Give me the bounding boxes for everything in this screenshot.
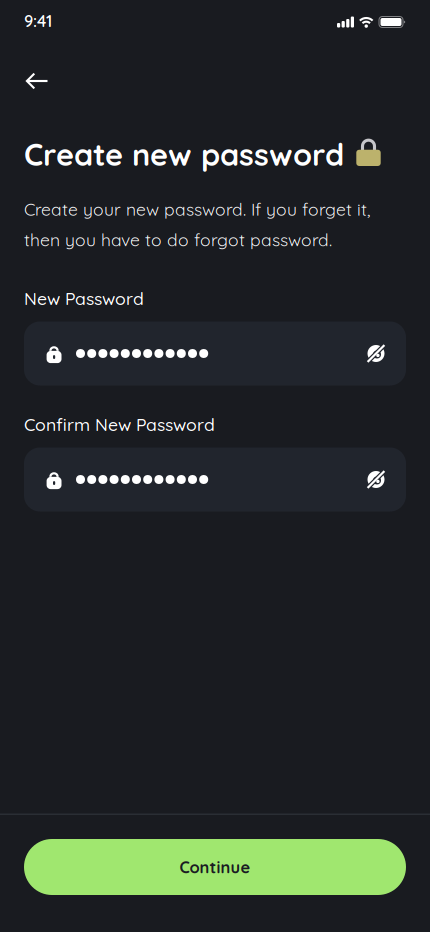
button[interactable]: Back	[15, 59, 59, 103]
staticText: then you have to do forgot password.	[24, 229, 332, 250]
staticText: Continue	[179, 857, 250, 877]
button[interactable]: Show password	[364, 467, 388, 491]
staticText: Create new password	[24, 135, 344, 173]
staticText: Confirm New Password	[24, 413, 215, 435]
button[interactable]: Show password	[364, 341, 388, 365]
button[interactable]: Continue	[24, 839, 406, 895]
staticText: New Password	[24, 287, 144, 309]
staticText: Create your new password. If you forget …	[24, 198, 370, 220]
staticText: 9:41	[24, 10, 52, 31]
